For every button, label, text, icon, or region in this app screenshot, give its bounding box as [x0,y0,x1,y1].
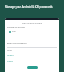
staticText: Show [7,49,12,52]
staticText: user [12,30,16,33]
staticText: Manage your Android & iOS passwords [5,5,53,9]
button[interactable]: user [9,30,16,33]
staticText: Sign in with Google [5,22,59,25]
staticText: Create [7,60,13,63]
staticText: Choose an account [7,26,25,29]
staticText: Enter your password [7,42,27,45]
button[interactable]: Create [7,60,13,63]
staticText: Forgot? [7,54,14,57]
button[interactable]: Forgot? [7,54,14,57]
button[interactable]: Next [27,66,38,69]
